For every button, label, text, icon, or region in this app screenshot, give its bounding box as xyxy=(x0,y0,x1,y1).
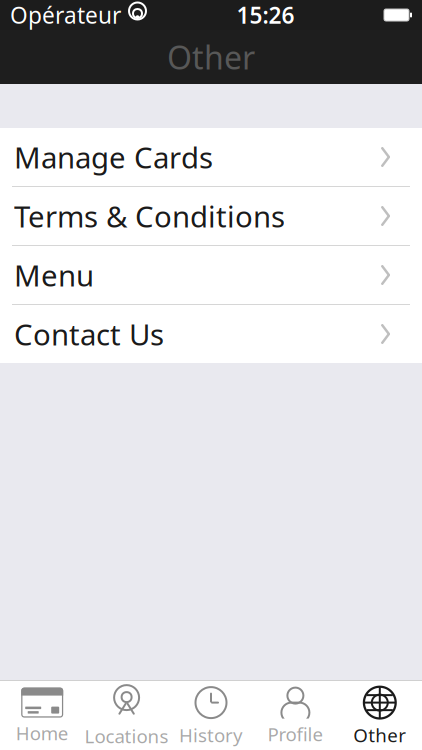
button[interactable]: Home xyxy=(0,681,84,750)
button[interactable]: Locations xyxy=(84,681,169,750)
staticText: History xyxy=(179,723,243,747)
staticText: Opérateur xyxy=(10,0,121,30)
button[interactable]: Manage Cards xyxy=(0,128,422,186)
staticText: Locations xyxy=(85,724,169,748)
button[interactable]: Profile xyxy=(253,681,338,750)
button[interactable]: Contact Us xyxy=(0,305,422,363)
button[interactable]: Terms & Conditions xyxy=(0,187,422,245)
staticText: Home xyxy=(16,721,69,745)
button[interactable]: History xyxy=(169,681,253,750)
staticText: Profile xyxy=(267,722,323,746)
staticText: Other xyxy=(353,723,406,747)
staticText: Other xyxy=(167,36,255,78)
staticText: Menu xyxy=(14,255,94,294)
button[interactable]: Other xyxy=(338,681,422,750)
button[interactable]: Menu xyxy=(0,246,422,304)
staticText: Contact Us xyxy=(14,314,164,353)
staticText: Manage Cards xyxy=(14,137,213,176)
staticText: Terms & Conditions xyxy=(14,196,285,235)
staticText: 15:26 xyxy=(236,0,294,30)
